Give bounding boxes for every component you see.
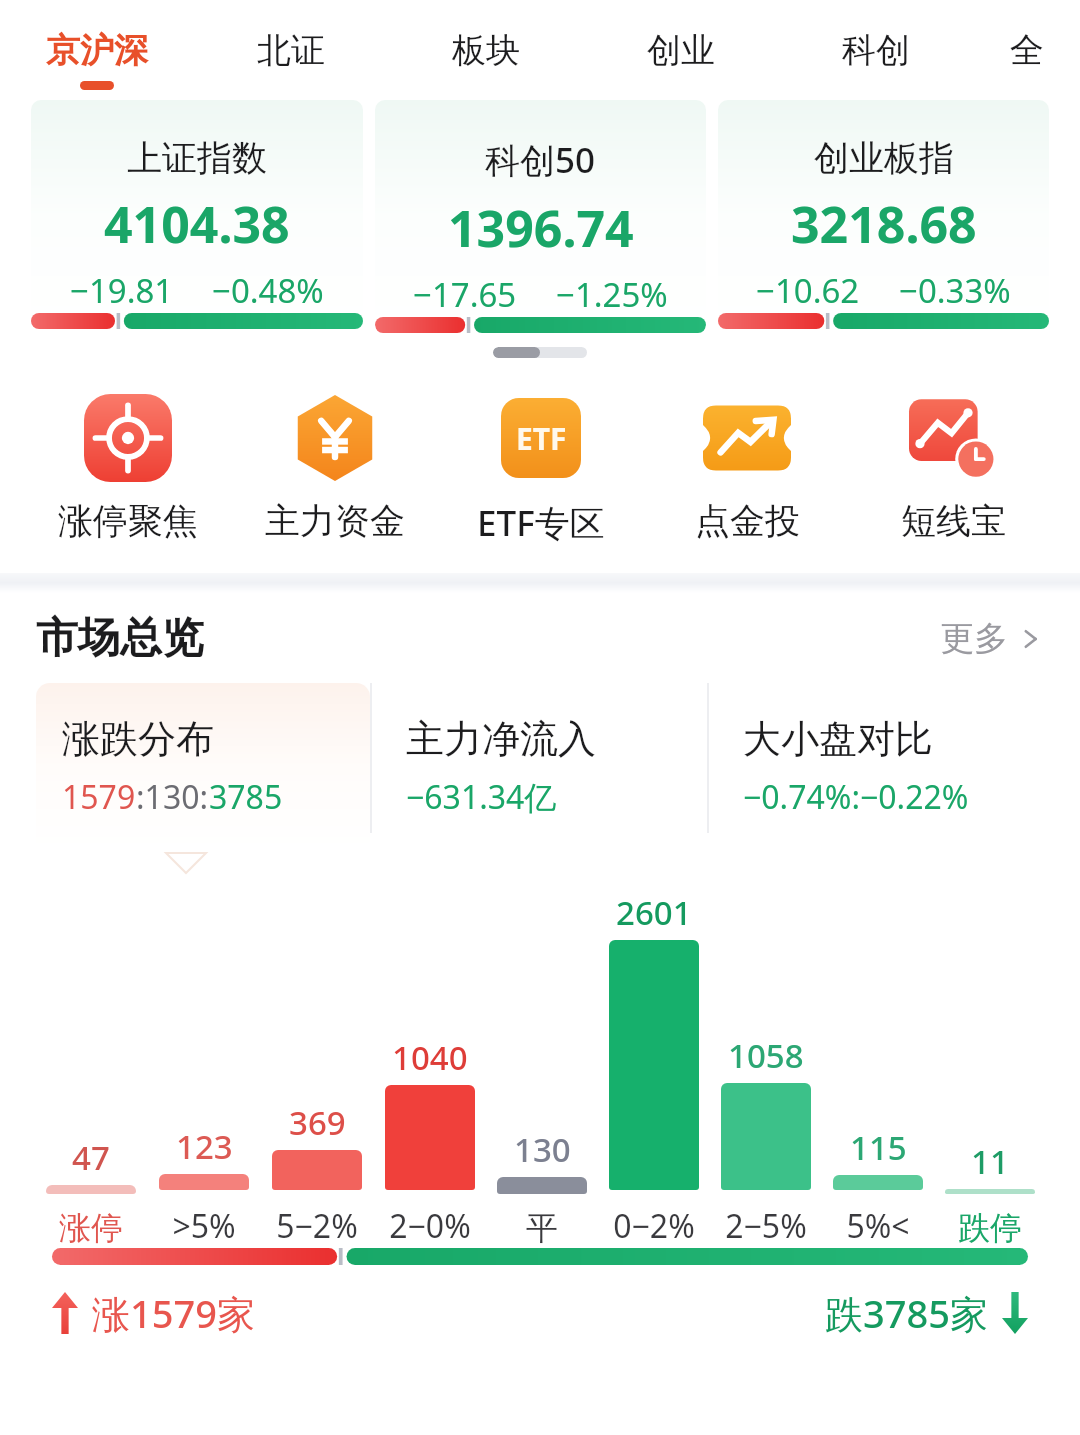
staticText: 京沪深 xyxy=(46,29,148,72)
button[interactable]: 全 xyxy=(973,0,1080,100)
staticText: −19.81 xyxy=(70,268,174,313)
staticText: 1058 xyxy=(728,1033,804,1078)
button[interactable]: 短线宝 xyxy=(850,391,1056,543)
button[interactable]: 科创 xyxy=(778,0,973,100)
staticText: :130: xyxy=(136,775,209,819)
staticText: ETF专区 xyxy=(477,499,605,547)
button[interactable]: 北证 xyxy=(194,0,388,100)
staticText: 369 xyxy=(289,1100,346,1145)
staticText: 2601 xyxy=(616,890,692,935)
button[interactable]: 大小盘对比 xyxy=(709,683,1044,851)
staticText: 5−2% xyxy=(276,1204,358,1248)
button[interactable]: 京沪深 xyxy=(0,0,194,100)
staticText: 5%< xyxy=(846,1204,910,1248)
staticText: 2−0% xyxy=(389,1204,471,1248)
button[interactable]: 板块 xyxy=(388,0,583,100)
staticText: 创业 xyxy=(647,29,715,72)
staticText: −631.34亿 xyxy=(406,775,557,819)
button[interactable]: 科创50 xyxy=(375,100,706,335)
staticText: −0.33% xyxy=(899,268,1011,313)
staticText: 涨停 xyxy=(59,1208,123,1248)
staticText: 4104.38 xyxy=(104,190,290,258)
button[interactable]: 上证指数 xyxy=(31,100,363,335)
staticText: 跌3785家 xyxy=(825,1287,988,1339)
staticText: 1396.74 xyxy=(448,194,634,262)
button[interactable]: 涨跌分布 xyxy=(36,683,370,851)
staticText: 0−2% xyxy=(613,1204,695,1248)
staticText: −0.48% xyxy=(212,268,324,313)
staticText: 11 xyxy=(971,1139,1009,1184)
button[interactable]: 主力净流入 xyxy=(372,683,707,851)
staticText: −1.25% xyxy=(556,272,668,317)
staticText: 北证 xyxy=(257,29,325,72)
staticText: 涨停聚焦 xyxy=(58,499,198,543)
staticText: 主力资金 xyxy=(265,499,405,543)
button[interactable]: 主力资金 xyxy=(231,391,438,543)
button[interactable]: 点金投 xyxy=(644,391,850,543)
button[interactable]: 创业 xyxy=(583,0,778,100)
staticText: 3785 xyxy=(209,775,283,819)
staticText: 123 xyxy=(176,1124,233,1169)
staticText: 全 xyxy=(1010,29,1044,72)
button[interactable]: 更多 xyxy=(940,617,1044,660)
staticText: 创业板指 xyxy=(814,136,954,180)
staticText: 3218.68 xyxy=(791,190,977,258)
staticText: 130 xyxy=(514,1127,571,1172)
staticText: 市场总览 xyxy=(36,612,204,665)
staticText: 板块 xyxy=(452,29,520,72)
staticText: 短线宝 xyxy=(901,499,1006,543)
button[interactable]: 涨停聚焦 xyxy=(24,391,231,543)
staticText: −10.62 xyxy=(756,268,860,313)
staticText: 115 xyxy=(850,1125,907,1170)
staticText: 跌停 xyxy=(958,1208,1022,1248)
staticText: −0.74%:−0.22% xyxy=(743,775,969,819)
staticText: 涨1579家 xyxy=(92,1287,255,1339)
button[interactable]: 创业板指 xyxy=(718,100,1049,335)
staticText: 大小盘对比 xyxy=(743,715,933,763)
staticText: 1579 xyxy=(62,775,136,819)
staticText: 科创 xyxy=(842,29,910,72)
staticText: 涨跌分布 xyxy=(62,715,214,763)
staticText: −17.65 xyxy=(413,272,517,317)
staticText: >5% xyxy=(172,1204,236,1248)
button[interactable]: ETF专区 xyxy=(438,391,644,547)
staticText: 1040 xyxy=(392,1035,468,1080)
staticText: ETF xyxy=(516,418,567,459)
staticText: 上证指数 xyxy=(127,136,267,180)
staticText: 科创50 xyxy=(485,136,596,184)
staticText: 点金投 xyxy=(695,499,800,543)
staticText: 47 xyxy=(72,1135,110,1180)
staticText: 主力净流入 xyxy=(406,715,596,763)
staticText: 平 xyxy=(526,1208,558,1248)
staticText: 2−5% xyxy=(725,1204,807,1248)
staticText: 更多 xyxy=(940,617,1008,660)
